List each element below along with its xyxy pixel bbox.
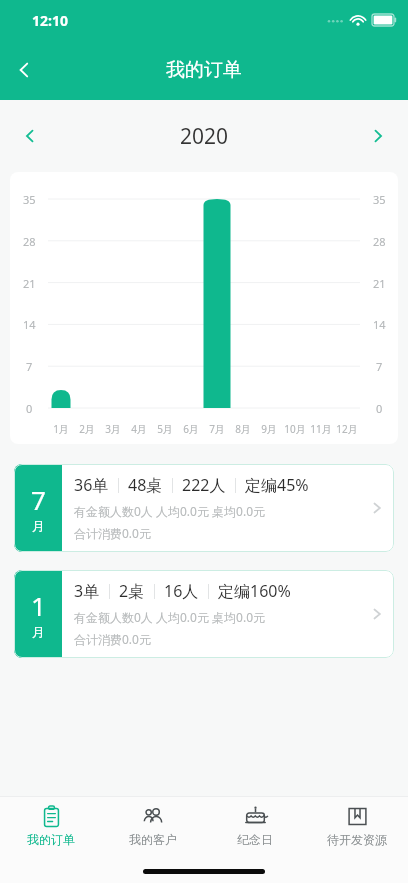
button[interactable]: 我的客户 [102,797,204,859]
staticText: 28 [373,234,386,248]
staticText: 0 [26,401,33,415]
button[interactable]: Previous year [8,114,52,158]
staticText: 11月 [310,422,332,436]
staticText: 1月 [53,422,69,436]
staticText: 8月 [235,422,251,436]
staticText: 14 [23,317,36,331]
staticText: 待开发资源 [327,832,387,847]
button[interactable]: 7 [14,464,394,552]
button[interactable]: Back [0,46,48,94]
staticText: 3月 [105,422,121,436]
button[interactable]: Next year [356,114,400,158]
staticText: 7 [26,359,33,373]
staticText: 14 [373,317,386,331]
staticText: 10月 [284,422,306,436]
button[interactable]: 待开发资源 [306,797,408,859]
staticText: 7月 [209,422,225,436]
staticText: 9月 [261,422,277,436]
staticText: 纪念日 [237,832,273,847]
staticText: 定编160% [218,580,291,602]
staticText: 有金额人数0人 人均0.0元 桌均0.0元 [74,609,265,625]
staticText: 4月 [131,422,147,436]
staticText: 36单 [74,474,109,496]
staticText: 12:10 [32,11,68,30]
button[interactable]: 我的订单 [0,797,102,859]
staticText: 月 [32,518,45,534]
staticText: 35 [373,192,386,206]
staticText: 21 [23,276,36,290]
staticText: 7 [31,482,46,517]
button[interactable]: 纪念日 [204,797,306,859]
staticText: 48桌 [128,474,163,496]
staticText: 28 [23,234,36,248]
staticText: 5月 [157,422,173,436]
staticText: 1 [31,588,46,623]
staticText: 35 [23,192,36,206]
staticText: 我的订单 [27,832,75,847]
staticText: 月 [32,624,45,640]
staticText: 我的客户 [129,832,177,847]
staticText: 0 [376,401,383,415]
staticText: 定编45% [245,474,309,496]
button[interactable]: 1 [14,570,394,658]
staticText: 6月 [183,422,199,436]
staticText: 2桌 [119,580,145,602]
staticText: 合计消费0.0元 [74,631,151,647]
staticText: 7 [376,359,383,373]
staticText: 3单 [74,580,100,602]
staticText: 16人 [164,580,199,602]
staticText: 21 [373,276,386,290]
staticText: 12月 [336,422,358,436]
staticText: 有金额人数0人 人均0.0元 桌均0.0元 [74,503,265,519]
staticText: 2月 [79,422,95,436]
staticText: 合计消费0.0元 [74,525,151,541]
staticText: 我的订单 [166,58,242,82]
staticText: 222人 [182,474,226,496]
staticText: 2020 [180,122,229,151]
